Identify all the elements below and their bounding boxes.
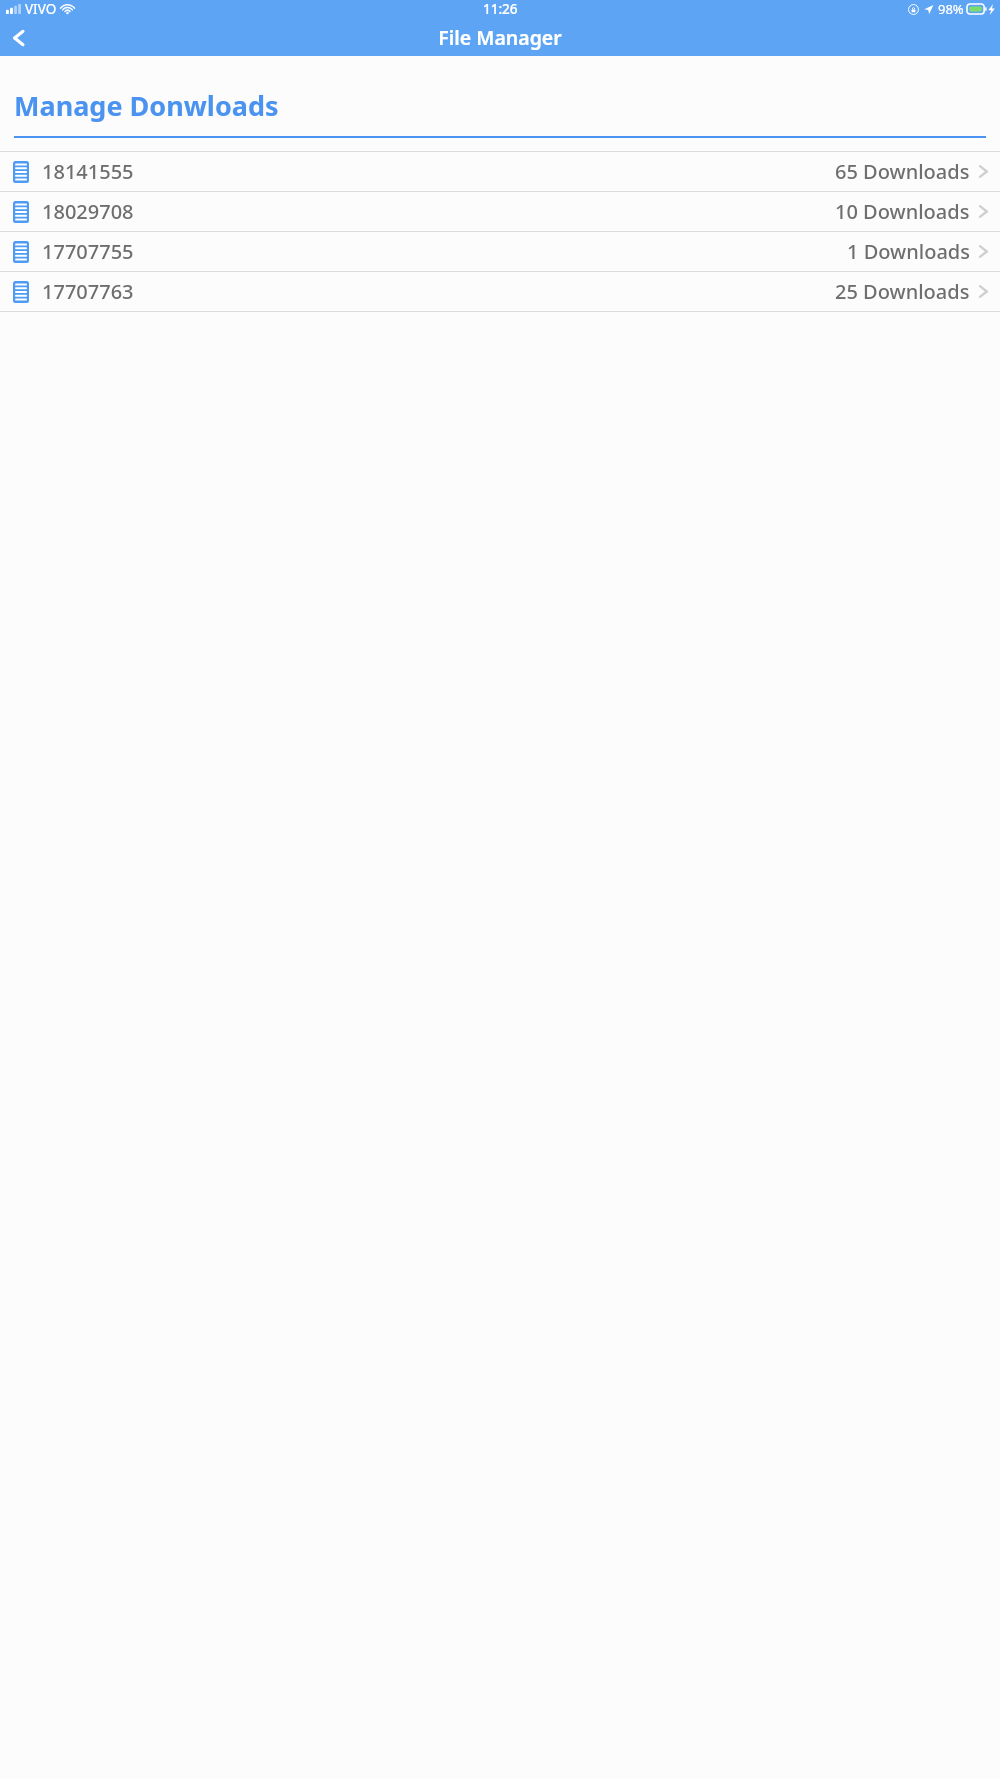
button[interactable]: Back — [3, 22, 34, 53]
button[interactable]: 18141555 — [0, 152, 1000, 191]
button[interactable]: 18029708 — [0, 192, 1000, 231]
staticText: VIVO — [25, 0, 57, 18]
staticText: 11:26 — [483, 0, 518, 18]
staticText: 18029708 — [42, 198, 134, 225]
staticText: 98% — [938, 0, 964, 18]
staticText: Manage Donwloads — [14, 87, 279, 124]
staticText: 65 Downloads — [835, 158, 970, 185]
staticText: 18141555 — [42, 158, 134, 185]
button[interactable]: 17707763 — [0, 272, 1000, 311]
button[interactable]: 17707755 — [0, 232, 1000, 271]
staticText: 17707763 — [42, 278, 134, 305]
staticText: 1 Downloads — [847, 238, 970, 265]
staticText: File Manager — [438, 24, 562, 51]
staticText: 10 Downloads — [835, 198, 970, 225]
staticText: 17707755 — [42, 238, 134, 265]
staticText: 25 Downloads — [835, 278, 970, 305]
